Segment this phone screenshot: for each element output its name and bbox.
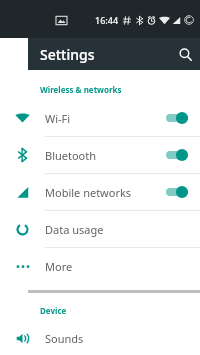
button[interactable] <box>160 142 194 168</box>
staticText: Bluetooth <box>45 148 160 163</box>
staticText: Data usage <box>45 222 160 237</box>
button[interactable]: More <box>0 248 200 284</box>
staticText: 16:44 <box>95 14 119 26</box>
staticText: Mobile networks <box>45 185 160 200</box>
button[interactable]: Search <box>170 39 200 69</box>
button[interactable]: Wi-Fi <box>0 100 200 136</box>
staticText: Device <box>40 305 67 316</box>
button[interactable]: Data usage <box>0 211 200 247</box>
button[interactable] <box>160 179 194 205</box>
staticText: More <box>45 259 160 274</box>
button[interactable]: Sounds <box>0 321 200 355</box>
button[interactable]: Bluetooth <box>0 137 200 173</box>
staticText: Settings <box>40 45 95 64</box>
button[interactable] <box>160 105 194 131</box>
button[interactable]: Mobile networks <box>0 174 200 210</box>
staticText: Sounds <box>45 331 160 346</box>
staticText: Wi-Fi <box>45 111 160 126</box>
staticText: Wireless & networks <box>40 84 122 95</box>
